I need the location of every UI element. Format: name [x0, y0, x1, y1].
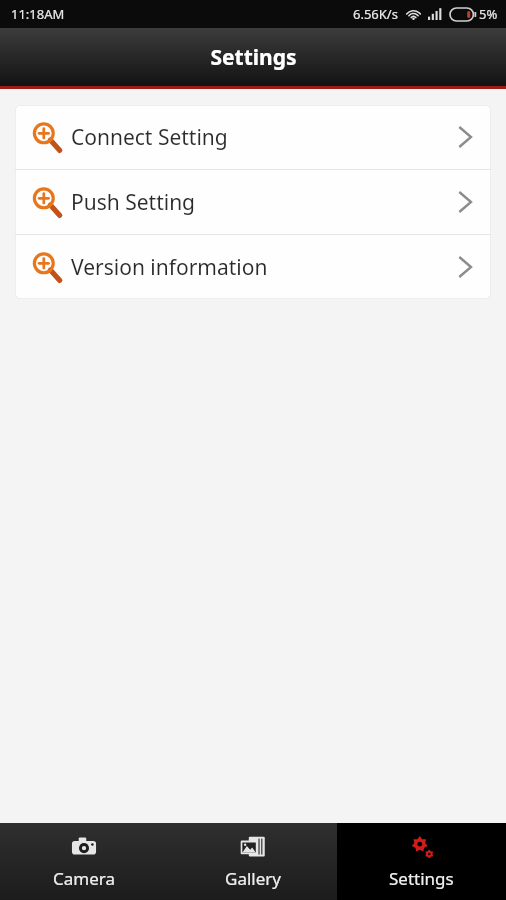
staticText: Camera [53, 867, 115, 890]
button[interactable]: Connect Setting [15, 105, 491, 169]
button[interactable]: Gallery [168, 823, 337, 900]
button[interactable]: Camera [0, 823, 168, 900]
staticText: 5% [479, 5, 498, 23]
staticText: Settings [210, 43, 297, 72]
button[interactable]: Version information [15, 235, 491, 299]
button[interactable]: Push Setting [15, 170, 491, 234]
staticText: Push Setting [71, 188, 455, 217]
staticText: 6.56K/s [353, 5, 398, 23]
button[interactable]: Settings [337, 823, 506, 900]
staticText: 11:18AM [11, 5, 65, 23]
staticText: Gallery [225, 867, 281, 890]
staticText: Settings [389, 867, 454, 890]
staticText: Connect Setting [71, 123, 455, 152]
staticText: Version information [71, 253, 455, 282]
